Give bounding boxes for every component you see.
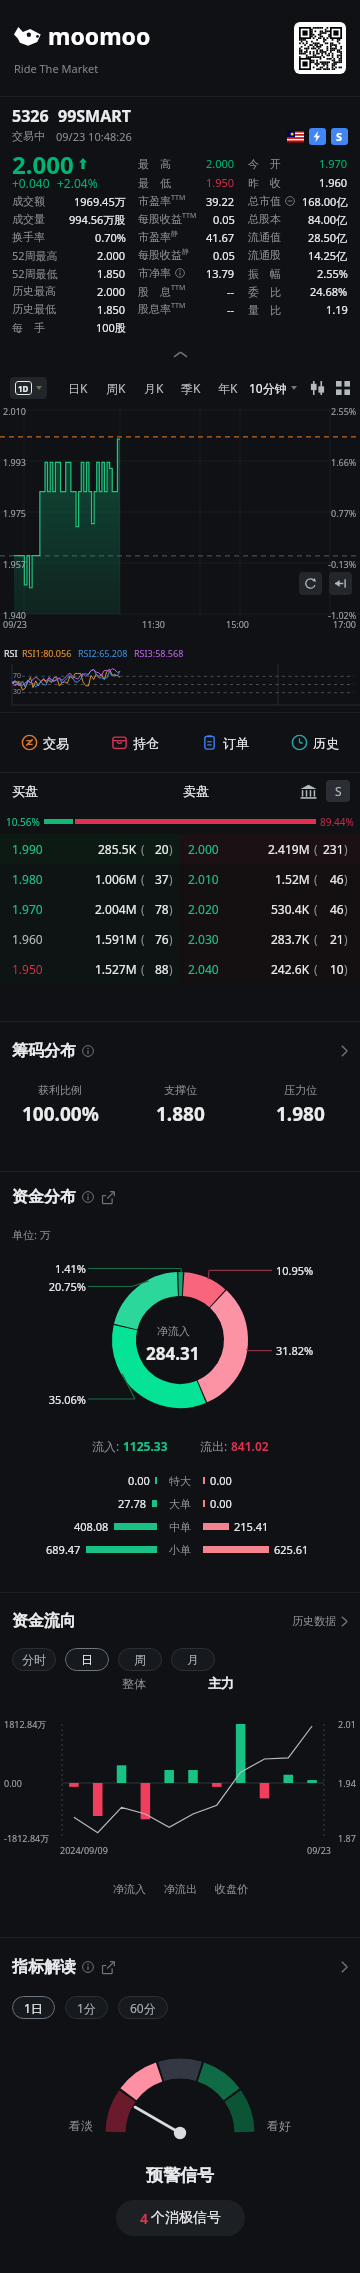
- button[interactable]: 日: [65, 1648, 109, 1671]
- button[interactable]: Grid view: [336, 381, 350, 395]
- staticText: 压力位: [284, 1083, 317, 1097]
- button[interactable]: 1分: [65, 1996, 108, 2019]
- staticText: 流入:: [92, 1438, 123, 1454]
- button[interactable]: 筹码分布: [12, 1022, 348, 1079]
- staticText: 17:00: [333, 618, 357, 630]
- button[interactable]: Broker queue: [300, 783, 317, 800]
- staticText: 股 息: [138, 284, 171, 299]
- staticText: 流通值: [248, 230, 281, 244]
- button[interactable]: 历史数据: [292, 1614, 348, 1628]
- staticText: TTM: [182, 211, 197, 221]
- staticText: 09/23: [3, 618, 27, 630]
- staticText: --: [227, 284, 235, 299]
- button[interactable]: 4: [116, 2200, 245, 2236]
- staticText: 2.010: [3, 405, 27, 417]
- staticText: S: [336, 129, 343, 144]
- button[interactable]: S: [326, 780, 350, 802]
- staticText: 50: [13, 679, 22, 689]
- staticText: 2.004M: [95, 901, 137, 917]
- staticText: 88: [155, 961, 169, 977]
- staticText: 13.79: [206, 266, 235, 281]
- staticText: 历史: [313, 735, 339, 751]
- staticText: 10.95%: [276, 1263, 314, 1278]
- staticText: 看淡: [69, 2118, 93, 2133]
- button[interactable]: 1.960: [0, 924, 360, 954]
- button[interactable]: 历史: [270, 713, 360, 772]
- button[interactable]: QR code: [294, 22, 346, 74]
- staticText: 1812.84万: [4, 1718, 47, 1730]
- staticText: 1D: [18, 383, 29, 394]
- staticText: 2.020: [188, 901, 219, 917]
- staticText: 0.00: [210, 1473, 232, 1488]
- staticText: 1.950: [206, 175, 235, 190]
- button[interactable]: Level 2 quotes: [309, 128, 326, 145]
- staticText: 285.5K: [98, 841, 137, 857]
- staticText: 净流入: [113, 1882, 146, 1896]
- staticText: 0.05: [213, 248, 235, 263]
- button[interactable]: Candles: [310, 381, 325, 395]
- staticText: 168.00亿: [302, 194, 348, 209]
- staticText: 市盈率: [138, 230, 171, 244]
- staticText: 1.940: [3, 609, 27, 621]
- button[interactable]: 指标解读: [12, 1938, 348, 1996]
- staticText: 1.960: [12, 931, 43, 947]
- button[interactable]: 日K: [59, 372, 97, 404]
- staticText: ): [344, 901, 348, 917]
- button[interactable]: 周: [118, 1648, 162, 1671]
- staticText: 流通股: [248, 248, 281, 262]
- button[interactable]: Refresh: [299, 572, 322, 595]
- staticText: 2.000: [188, 841, 219, 857]
- button[interactable]: 交易: [0, 713, 90, 772]
- staticText: ): [169, 961, 173, 977]
- button[interactable]: Short selling: [331, 128, 348, 145]
- button[interactable]: 1.950: [0, 954, 360, 984]
- staticText: 2.010: [188, 871, 219, 887]
- staticText: 1.950: [12, 961, 43, 977]
- staticText: 市盈率: [138, 194, 171, 208]
- staticText: 10: [330, 961, 344, 977]
- button[interactable]: 年K: [209, 372, 246, 404]
- button[interactable]: 整体: [122, 1676, 146, 1691]
- button[interactable]: 周K: [97, 372, 135, 404]
- button[interactable]: 分时: [12, 1648, 56, 1671]
- staticText: 100股: [96, 320, 126, 335]
- button[interactable]: 季K: [172, 372, 209, 404]
- staticText: ): [344, 871, 348, 887]
- button[interactable]: 1.970: [0, 894, 360, 924]
- button[interactable]: 60分: [118, 1996, 168, 2019]
- staticText: 1.970: [319, 156, 348, 171]
- staticText: (: [141, 841, 145, 857]
- staticText: 2.000: [97, 248, 126, 263]
- staticText: ): [344, 841, 348, 857]
- button[interactable]: 1日: [12, 1996, 55, 2019]
- button[interactable]: 月K: [135, 372, 172, 404]
- button[interactable]: 1D: [10, 377, 47, 399]
- staticText: 4: [140, 2209, 149, 2228]
- button[interactable]: 订单: [180, 713, 270, 772]
- staticText: 35.06%: [2, 1392, 86, 1407]
- staticText: 月K: [144, 380, 164, 396]
- button[interactable]: 10分钟: [249, 372, 297, 404]
- staticText: (: [314, 931, 318, 947]
- button[interactable]: 1.990: [0, 834, 360, 864]
- staticText: 46: [330, 871, 344, 887]
- staticText: 年K: [218, 380, 238, 396]
- staticText: 净流出: [164, 1882, 197, 1896]
- staticText: 70: [13, 671, 22, 681]
- staticText: 支撑位: [164, 1083, 197, 1097]
- staticText: 2.55%: [317, 266, 348, 281]
- staticText: S: [335, 783, 342, 799]
- button[interactable]: Share: [102, 1961, 115, 1974]
- staticText: 换手率: [12, 230, 45, 244]
- staticText: 841.02: [231, 1438, 269, 1454]
- button[interactable]: 1.980: [0, 864, 360, 894]
- staticText: 最 高: [138, 156, 171, 171]
- staticText: 振 幅: [248, 266, 281, 281]
- button[interactable]: 月: [171, 1648, 215, 1671]
- staticText: 1日: [24, 2000, 43, 2016]
- button[interactable]: Jump to latest: [329, 572, 352, 595]
- button[interactable]: Share: [102, 1191, 115, 1204]
- button[interactable]: 持仓: [90, 713, 180, 772]
- staticText: RSI3:58.568: [134, 647, 184, 659]
- button[interactable]: 主力: [208, 1675, 234, 1691]
